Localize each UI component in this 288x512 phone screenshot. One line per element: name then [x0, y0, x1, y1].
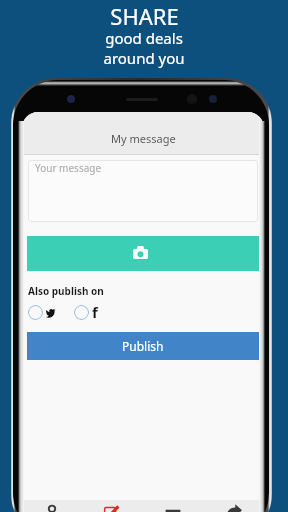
button[interactable]: Publish on Facebook [72, 300, 100, 324]
staticText: Also publish on [28, 284, 104, 298]
button[interactable]: List [142, 500, 203, 512]
staticText: Your message [35, 161, 102, 175]
button[interactable]: Publish on Twitter [26, 303, 58, 322]
button[interactable]: Share [203, 500, 264, 512]
staticText: f [92, 302, 98, 322]
staticText: My message [111, 131, 176, 146]
button[interactable]: Profile [22, 500, 82, 512]
staticText: Publish [122, 338, 164, 354]
staticText: good deals around you [103, 28, 185, 68]
button[interactable]: Take photo [27, 236, 259, 271]
staticText: SHARE [110, 1, 179, 31]
button[interactable]: Publish [27, 332, 259, 360]
button[interactable]: Your message [28, 160, 258, 222]
button[interactable]: Compose [82, 500, 142, 512]
